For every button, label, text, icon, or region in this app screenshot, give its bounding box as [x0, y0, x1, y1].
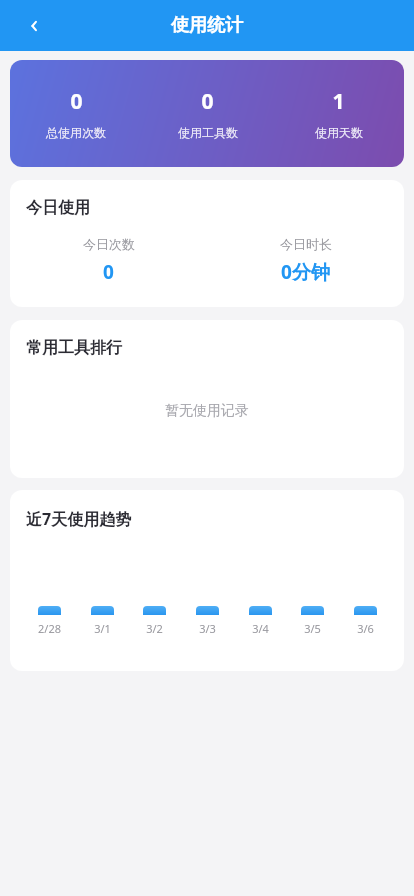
staticText: 总使用次数	[46, 125, 106, 140]
staticText: 近7天使用趋势	[26, 508, 132, 530]
staticText: 今日时长	[280, 236, 332, 252]
staticText: 今日次数	[83, 236, 135, 252]
button[interactable]: Back	[18, 10, 50, 42]
button[interactable]: 今日使用	[10, 180, 404, 307]
button[interactable]: 常用工具排行	[10, 320, 404, 478]
staticText: 常用工具排行	[26, 338, 122, 358]
button[interactable]: 近7天使用趋势	[10, 490, 404, 671]
staticText: 3/4	[252, 621, 269, 636]
staticText: 1	[332, 87, 345, 116]
staticText: 3/3	[199, 621, 216, 636]
staticText: 使用工具数	[178, 125, 238, 140]
button[interactable]: 0	[10, 60, 404, 167]
staticText: 3/1	[94, 621, 111, 636]
staticText: 3/5	[304, 621, 321, 636]
staticText: 今日使用	[26, 198, 90, 218]
staticText: 暂无使用记录	[165, 402, 249, 420]
staticText: 使用天数	[315, 125, 363, 140]
staticText: 3/6	[357, 621, 374, 636]
staticText: 0	[70, 87, 83, 116]
staticText: 0分钟	[281, 259, 330, 285]
staticText: 3/2	[146, 621, 163, 636]
staticText: 0	[201, 87, 214, 116]
staticText: 使用统计	[171, 14, 243, 37]
staticText: 2/28	[38, 621, 61, 636]
staticText: 0	[103, 259, 114, 285]
